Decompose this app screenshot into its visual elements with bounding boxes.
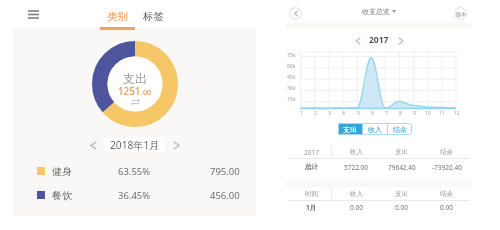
staticText: 6 — [371, 110, 374, 117]
staticText: 2017 — [369, 34, 389, 46]
staticText: 标签 — [143, 10, 164, 23]
staticText: .00 — [141, 87, 152, 97]
button[interactable]: Back — [289, 7, 302, 20]
button[interactable]: Next year — [395, 35, 406, 46]
button[interactable]: 1月 — [285, 199, 472, 215]
staticText: 0.00 — [395, 203, 408, 212]
staticText: 5 — [357, 110, 360, 117]
staticText: 收入 — [368, 125, 382, 134]
staticText: 10 — [425, 110, 431, 117]
staticText: -73920.40 — [432, 163, 462, 172]
staticText: 15k — [287, 96, 296, 103]
button[interactable]: 标签 — [140, 0, 166, 28]
staticText: 2018年1月 — [110, 138, 160, 152]
staticText: 健身 — [52, 165, 72, 178]
staticText: 总计 — [305, 163, 318, 171]
button[interactable]: 餐饮 — [13, 183, 256, 207]
button[interactable]: Previous year — [352, 35, 363, 46]
staticText: 11 — [439, 110, 445, 117]
staticText: 79642.40 — [388, 163, 416, 172]
staticText: 12 — [454, 110, 460, 117]
staticText: 支出 — [395, 148, 408, 156]
staticText: 餐饮 — [52, 189, 72, 202]
button[interactable]: 收支总览 — [358, 3, 400, 20]
staticText: 结余 — [440, 148, 453, 156]
button[interactable]: Menu — [22, 4, 44, 24]
button[interactable]: 健身 — [13, 159, 256, 183]
staticText: 版本 — [456, 11, 466, 17]
button[interactable]: 类别 — [99, 0, 136, 28]
staticText: 0.00 — [350, 203, 363, 212]
staticText: 类别 — [107, 10, 128, 23]
button[interactable]: 总计 — [285, 159, 472, 175]
staticText: 支出 — [343, 125, 357, 134]
staticText: 结余 — [440, 190, 453, 198]
staticText: 5722.00 — [344, 163, 369, 172]
button[interactable]: 支出 — [338, 123, 362, 135]
staticText: 收入 — [350, 148, 363, 156]
staticText: 收支总览 — [362, 7, 390, 16]
staticText: 4 — [342, 110, 345, 117]
staticText: 2 — [314, 110, 317, 117]
staticText: 456.00 — [210, 189, 240, 202]
staticText: 795.00 — [210, 165, 240, 178]
staticText: 45k — [287, 74, 296, 81]
button[interactable]: Previous month — [86, 138, 100, 152]
staticText: 9 — [413, 110, 416, 117]
staticText: 支出 — [123, 71, 147, 86]
staticText: 7 — [385, 110, 388, 117]
button[interactable]: Next month — [169, 138, 183, 152]
staticText: 60k — [287, 63, 296, 70]
staticText: 2017 — [304, 148, 319, 157]
button[interactable]: 收入 — [363, 123, 387, 135]
button[interactable]: 版本 — [454, 7, 467, 20]
staticText: 63.55% — [118, 165, 151, 178]
button[interactable]: 结余 — [388, 123, 412, 135]
staticText: 结余 — [393, 125, 407, 134]
staticText: 3 — [328, 110, 331, 117]
staticText: 8 — [399, 110, 402, 117]
button[interactable]: 2018年1月 — [104, 137, 165, 152]
staticText: 1251 — [118, 85, 141, 98]
staticText: 75k — [287, 52, 296, 59]
staticText: 支出 — [395, 190, 408, 198]
staticText: 36.45% — [118, 189, 151, 202]
staticText: 1月 — [306, 203, 317, 212]
staticText: 0.00 — [440, 203, 453, 212]
staticText: 收入 — [350, 190, 363, 198]
staticText: 时间 — [305, 190, 318, 198]
staticText: 1 — [300, 110, 303, 117]
staticText: 30k — [287, 85, 296, 92]
